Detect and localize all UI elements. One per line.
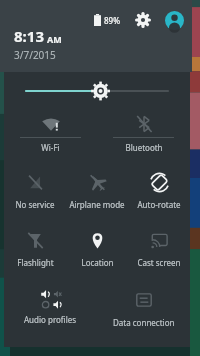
staticText: Flashlight: [17, 257, 54, 268]
staticText: Cast screen: [137, 257, 181, 268]
staticText: Data connection: [113, 317, 175, 328]
staticText: Airplane mode: [69, 199, 125, 210]
button[interactable]: Wi-Fi: [4, 110, 97, 162]
staticText: Audio profiles: [24, 314, 77, 325]
staticText: Location: [81, 257, 114, 268]
button[interactable]: Cast screen: [128, 226, 190, 278]
button[interactable]: No service: [4, 168, 66, 220]
button[interactable]: Settings: [132, 9, 154, 31]
staticText: Wi-Fi: [41, 142, 60, 153]
staticText: No service: [15, 199, 55, 210]
staticText: 89%: [104, 15, 120, 26]
button[interactable]: Airplane mode: [66, 168, 128, 220]
button[interactable]: Location: [66, 226, 128, 278]
staticText: Auto-rotate: [137, 199, 181, 210]
staticText: 8:13: [14, 26, 44, 46]
button[interactable]: Bluetooth: [97, 110, 190, 162]
button[interactable]: Data connection: [97, 286, 190, 336]
staticText: 3/7/2015: [14, 48, 56, 62]
button[interactable]: Battery 89 percent: [92, 14, 122, 26]
staticText: Bluetooth: [125, 142, 163, 153]
button[interactable]: Auto-rotate: [128, 168, 190, 220]
button[interactable]: User profile: [162, 8, 186, 32]
button[interactable]: Flashlight: [4, 226, 66, 278]
button[interactable]: Brightness: [4, 72, 190, 110]
button[interactable]: Audio profiles: [4, 286, 97, 336]
staticText: AM: [47, 33, 62, 45]
